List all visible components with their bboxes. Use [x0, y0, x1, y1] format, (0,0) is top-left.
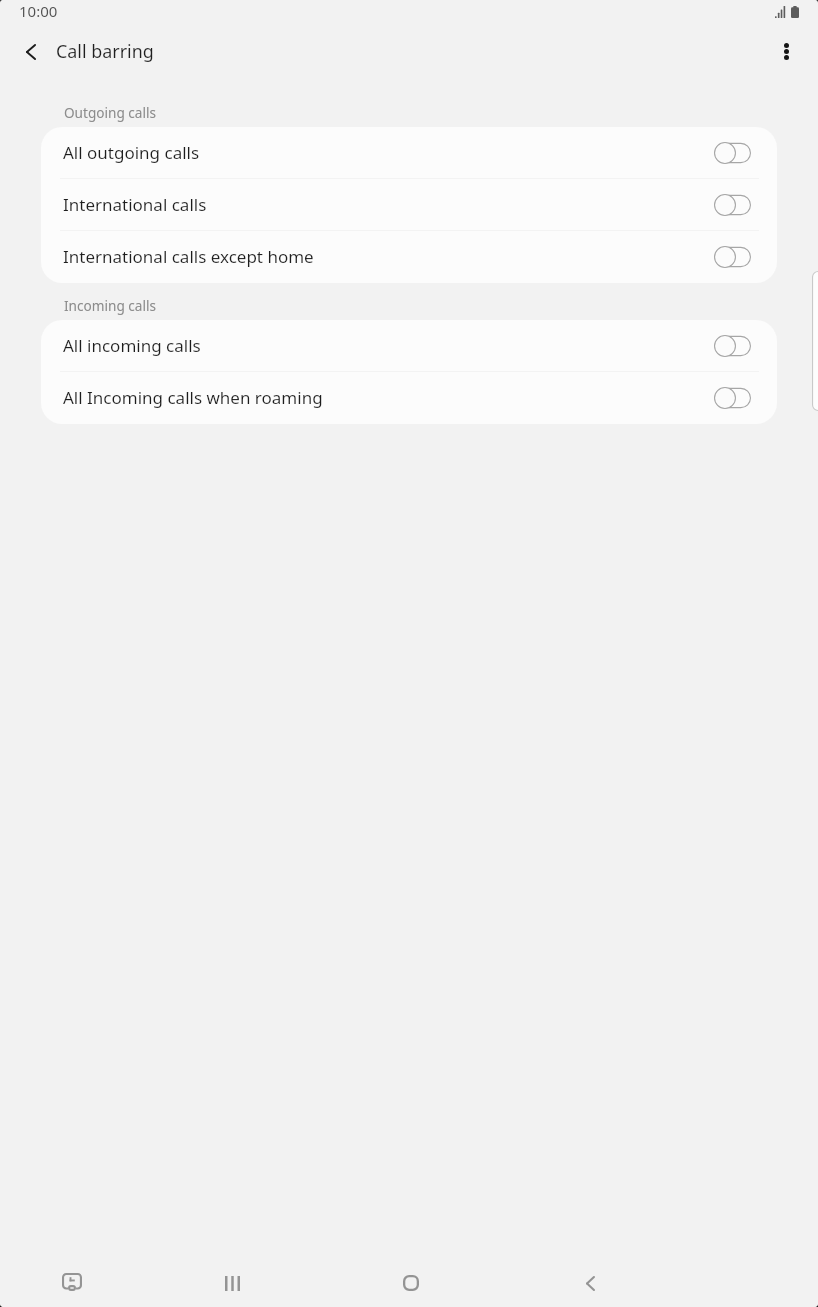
staticText: Call barring: [56, 39, 154, 63]
button[interactable]: More options: [762, 27, 810, 75]
button[interactable]: Back: [566, 1259, 614, 1307]
button[interactable]: Hide keyboard: [48, 1259, 96, 1307]
button[interactable]: Toggle: [714, 335, 751, 357]
button[interactable]: Navigate up: [7, 28, 55, 76]
staticText: Incoming calls: [64, 296, 156, 315]
button[interactable]: Toggle: [714, 387, 751, 409]
button[interactable]: All incoming calls: [41, 320, 777, 372]
staticText: All Incoming calls when roaming: [63, 386, 323, 409]
button[interactable]: International calls: [41, 179, 777, 231]
button[interactable]: Toggle: [714, 246, 751, 268]
staticText: All incoming calls: [63, 334, 201, 357]
button[interactable]: Recent apps: [208, 1259, 256, 1307]
button[interactable]: International calls except home: [41, 231, 777, 283]
button[interactable]: All Incoming calls when roaming: [41, 372, 777, 424]
button[interactable]: Home: [387, 1259, 435, 1307]
staticText: International calls: [63, 193, 207, 216]
button[interactable]: Toggle: [714, 142, 751, 164]
staticText: Outgoing calls: [64, 103, 156, 122]
staticText: All outgoing calls: [63, 141, 200, 164]
staticText: International calls except home: [63, 245, 314, 268]
button[interactable]: All outgoing calls: [41, 127, 777, 179]
button[interactable]: Toggle: [714, 194, 751, 216]
staticText: 10:00: [19, 1, 58, 21]
